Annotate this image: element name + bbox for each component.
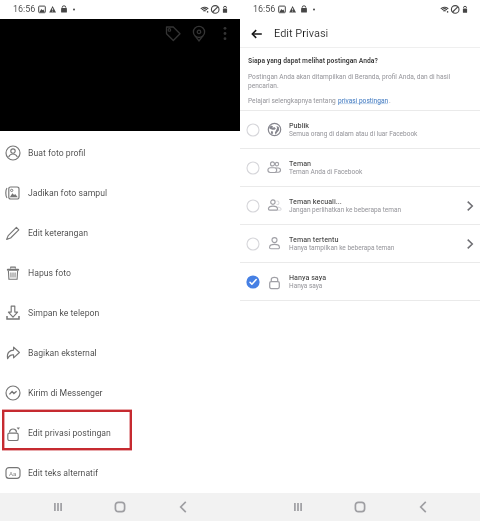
button[interactable]: Location: [186, 20, 212, 46]
staticText: Publik: [289, 121, 310, 129]
staticText: Simpan ke telepon: [28, 308, 100, 318]
staticText: Jadikan foto sampul: [28, 188, 108, 198]
button[interactable]: Teman kecuali...: [240, 187, 480, 224]
button[interactable]: Jadikan foto sampul: [0, 173, 240, 213]
button[interactable]: Publik: [240, 111, 480, 148]
staticText: Hapus foto: [28, 268, 71, 278]
button[interactable]: More options: [212, 20, 238, 46]
button[interactable]: Teman tertentu: [240, 225, 480, 262]
button[interactable]: Hanya saya: [240, 263, 480, 300]
staticText: Hanya saya: [289, 282, 323, 290]
staticText: Semua orang di dalam atau di luar Facebo…: [289, 130, 418, 138]
staticText: Edit keterangan: [28, 228, 88, 238]
button[interactable]: Home: [108, 495, 132, 519]
button[interactable]: privasi postingan: [338, 97, 389, 105]
staticText: Edit privasi postingan: [28, 428, 111, 438]
staticText: Edit Privasi: [274, 27, 329, 40]
button[interactable]: Edit privasi postingan: [0, 413, 240, 453]
button[interactable]: Back: [411, 495, 435, 519]
staticText: Teman: [289, 159, 312, 167]
staticText: Bagikan eksternal: [28, 348, 97, 358]
button[interactable]: Back: [171, 495, 195, 519]
staticText: Teman kecuali...: [289, 197, 342, 205]
button[interactable]: Edit keterangan: [0, 213, 240, 253]
staticText: 16:56: [13, 4, 36, 15]
button[interactable]: Home: [348, 495, 372, 519]
button[interactable]: Simpan ke telepon: [0, 293, 240, 333]
staticText: Teman Anda di Facebook: [289, 168, 363, 176]
staticText: Teman tertentu: [289, 235, 339, 243]
button[interactable]: Kirim di Messenger: [0, 373, 240, 413]
button[interactable]: Aa: [0, 453, 240, 493]
staticText: Siapa yang dapat melihat postingan Anda?: [248, 57, 378, 65]
staticText: 16:56: [253, 4, 276, 15]
staticText: Aa: [9, 470, 17, 477]
button[interactable]: Tag photo: [160, 20, 186, 46]
staticText: Hanya tampilkan ke beberapa teman: [289, 244, 395, 252]
staticText: Postingan Anda akan ditampilkan di Beran…: [248, 73, 467, 90]
staticText: Hanya saya: [289, 273, 327, 281]
button[interactable]: Buat foto profil: [0, 133, 240, 173]
staticText: Buat foto profil: [28, 148, 86, 158]
button[interactable]: Recent apps: [46, 495, 70, 519]
button[interactable]: Teman: [240, 149, 480, 186]
button[interactable]: Recent apps: [286, 495, 310, 519]
staticText: Edit teks alternatif: [28, 468, 99, 478]
staticText: .: [389, 97, 391, 105]
staticText: Jangan perlihatkan ke beberapa teman: [289, 206, 402, 214]
button[interactable]: Back: [244, 21, 269, 46]
staticText: Pelajari selengkapnya tentang: [248, 97, 338, 105]
button[interactable]: Hapus foto: [0, 253, 240, 293]
button[interactable]: Bagikan eksternal: [0, 333, 240, 373]
staticText: Kirim di Messenger: [28, 388, 103, 398]
